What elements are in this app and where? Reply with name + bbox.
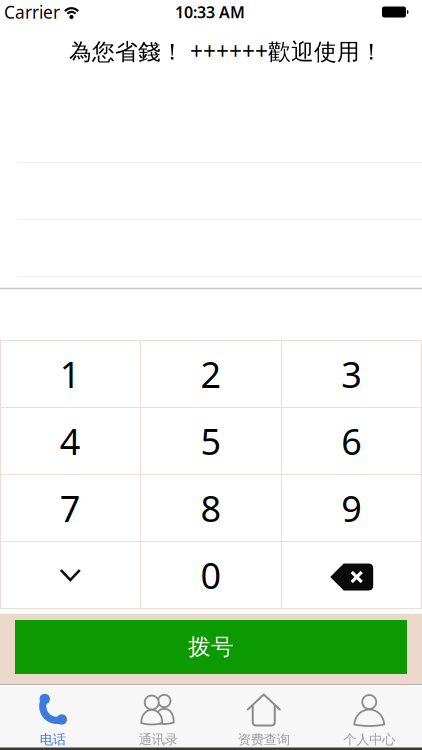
- staticText: 8: [200, 484, 221, 532]
- staticText: 為您省錢！ ++++++歡迎使用！: [69, 36, 383, 66]
- button[interactable]: 2: [141, 340, 281, 407]
- staticText: 10:33 AM: [175, 1, 245, 23]
- button[interactable]: Delete: [282, 543, 422, 610]
- staticText: 通讯录: [139, 731, 178, 748]
- button[interactable]: 资费查询: [211, 684, 316, 748]
- button[interactable]: 通讯录: [105, 684, 211, 748]
- button[interactable]: 0: [141, 541, 281, 608]
- staticText: 2: [200, 350, 221, 398]
- staticText: 4: [60, 417, 81, 465]
- button[interactable]: Hide keypad: [0, 541, 140, 608]
- button[interactable]: 9: [282, 474, 422, 541]
- staticText: 5: [200, 417, 221, 465]
- staticText: 9: [341, 484, 362, 532]
- staticText: 6: [341, 417, 362, 465]
- button[interactable]: 8: [141, 474, 281, 541]
- staticText: 拨号: [188, 633, 234, 661]
- button[interactable]: 1: [0, 340, 140, 407]
- staticText: Carrier: [4, 0, 60, 23]
- button[interactable]: 电话: [0, 684, 105, 748]
- button[interactable]: 个人中心: [316, 684, 422, 748]
- button[interactable]: 7: [0, 474, 140, 541]
- button[interactable]: 6: [282, 407, 422, 474]
- staticText: 电话: [40, 731, 66, 748]
- staticText: 3: [341, 350, 362, 398]
- staticText: 0: [200, 551, 221, 599]
- staticText: 个人中心: [343, 731, 395, 748]
- button[interactable]: 5: [141, 407, 281, 474]
- staticText: 7: [60, 484, 81, 532]
- staticText: 1: [60, 350, 81, 398]
- button[interactable]: 4: [0, 407, 140, 474]
- button[interactable]: 3: [282, 340, 422, 407]
- button[interactable]: 拨号: [15, 620, 407, 674]
- staticText: 资费查询: [238, 731, 290, 748]
